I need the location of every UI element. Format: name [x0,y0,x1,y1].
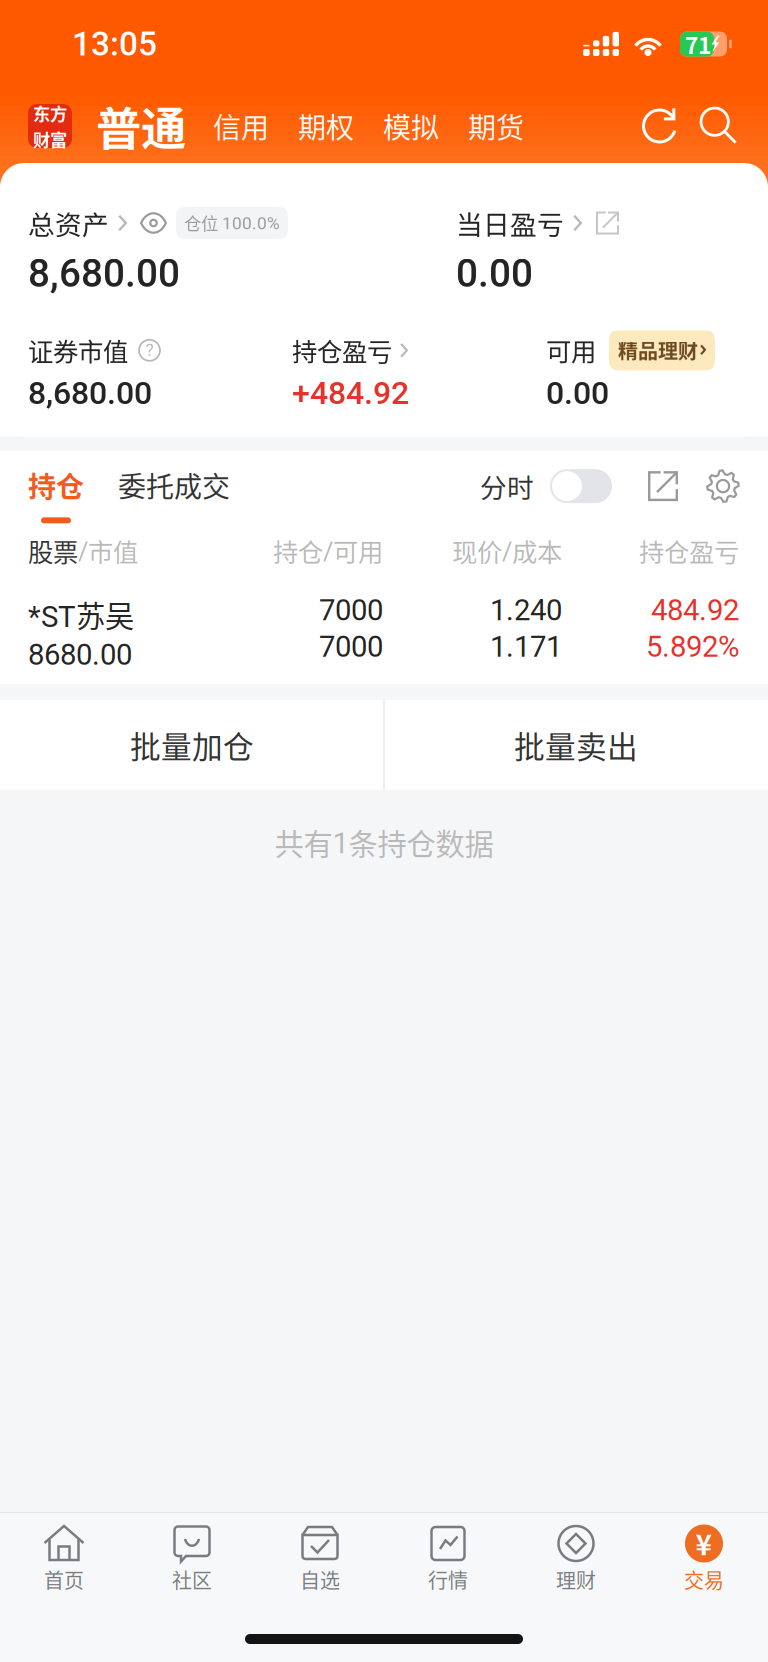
staticText: 8,680.00 [28,374,152,412]
staticText: 理财 [556,1565,596,1594]
staticText: 社区 [172,1565,212,1594]
staticText: 分时 [480,467,534,505]
button[interactable]: 首页 [0,1513,128,1602]
staticText: 期货 [468,106,524,146]
staticText: 0.00 [546,374,609,412]
staticText: 总资产 [28,204,109,242]
staticText: /可用 [323,532,383,569]
staticText: 当日盈亏 [456,204,564,242]
staticText: 0.00 [456,251,533,296]
staticText: 委托成交 [118,465,230,505]
staticText: 证券市值 [28,332,128,369]
button[interactable]: Refresh [642,108,677,143]
staticText: 1.240 [490,593,562,627]
button[interactable]: 期货 [465,100,527,152]
staticText: 13:05 [72,24,157,64]
button[interactable]: 自选 [256,1513,384,1602]
staticText: 交易 [684,1565,724,1594]
button[interactable]: 持仓 [28,465,84,523]
staticText: 持仓盈亏 [292,332,392,369]
staticText: 1.171 [490,629,562,664]
button[interactable]: Share [648,471,678,501]
button[interactable]: 批量卖出 [384,700,768,790]
button[interactable]: Time-sharing toggle [550,469,612,503]
staticText: 持仓盈亏 [639,532,739,569]
staticText: 5.892% [646,629,739,664]
staticText: 期权 [298,106,354,146]
button[interactable]: 社区 [128,1513,256,1602]
button[interactable]: ¥ [640,1513,768,1602]
staticText: 模拟 [383,106,439,146]
button[interactable]: 行情 [384,1513,512,1602]
staticText: 股票 [28,532,78,569]
staticText: 首页 [44,1565,84,1594]
staticText: 行情 [428,1565,468,1594]
staticText: 信用 [213,106,269,146]
staticText: *ST苏吴 [28,593,134,635]
staticText: 普通 [96,93,186,159]
staticText: ¥ [695,1523,712,1563]
button[interactable]: 批量加仓 [0,700,384,790]
staticText: ? [145,340,153,360]
button[interactable]: 信用 [210,100,272,152]
staticText: 持仓 [28,465,84,505]
button[interactable]: *ST苏吴 [0,569,768,684]
staticText: /市值 [78,532,138,569]
staticText: 仓位 100.0% [184,210,280,235]
staticText: 东方 [33,100,67,125]
staticText: 批量卖出 [514,723,638,767]
staticText: 8,680.00 [28,251,180,296]
staticText: 7000 [319,629,383,664]
staticText: 可用 [546,332,596,369]
button[interactable]: Settings [706,469,740,503]
staticText: +484.92 [292,374,409,412]
button[interactable]: Search [701,108,737,144]
staticText: 484.92 [651,593,739,627]
staticText: 财富 [33,126,67,152]
button[interactable]: 模拟 [380,100,442,152]
staticText: 自选 [300,1565,340,1594]
staticText: 持仓 [273,532,323,569]
button[interactable]: 理财 [512,1513,640,1602]
staticText: /成本 [502,532,562,569]
staticText: 批量加仓 [130,723,254,767]
staticText: 精品理财 [618,335,698,364]
button[interactable]: 委托成交 [118,465,230,523]
staticText: 现价 [452,532,502,569]
button[interactable]: 期权 [295,100,357,152]
staticText: 8680.00 [28,637,132,672]
staticText: 71 [685,28,711,60]
staticText: 7000 [319,593,383,627]
staticText: 共有1条持仓数据 [274,821,493,863]
